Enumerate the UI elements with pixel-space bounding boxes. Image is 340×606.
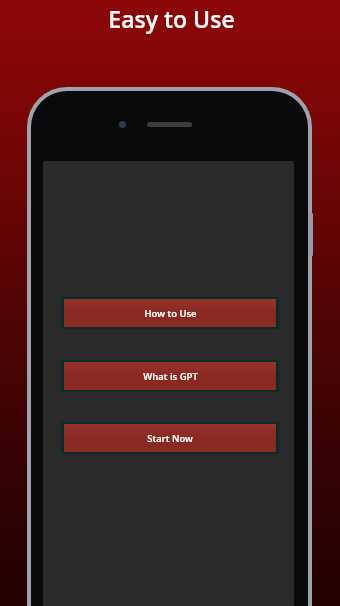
staticText: What is GPT xyxy=(143,370,198,383)
button[interactable]: Power button xyxy=(308,213,313,256)
button[interactable]: Start Now xyxy=(61,422,279,454)
staticText: Easy to Use xyxy=(108,3,235,34)
button[interactable]: How to Use xyxy=(61,297,279,329)
staticText: Start Now xyxy=(147,432,193,445)
staticText: How to Use xyxy=(144,307,197,320)
button[interactable]: What is GPT xyxy=(61,360,279,392)
